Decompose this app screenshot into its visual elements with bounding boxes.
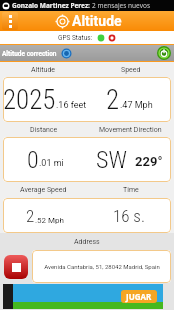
staticText: 229° — [135, 154, 163, 169]
button[interactable]: Altitude correction — [0, 45, 174, 61]
button[interactable]: Stop — [4, 255, 28, 279]
staticText: Time — [123, 186, 139, 194]
staticText: .52 Mph — [35, 216, 64, 225]
staticText: 2 — [106, 84, 120, 116]
staticText: Movement Direction — [99, 126, 162, 134]
staticText: 2 — [26, 206, 35, 226]
staticText: Speed — [121, 66, 141, 74]
staticText: Altitude — [72, 13, 122, 29]
button[interactable]: 2025 — [3, 77, 171, 122]
button[interactable]: Advertisement — [3, 284, 174, 309]
staticText: .47 Mph — [120, 100, 153, 111]
button[interactable]: 0 — [3, 137, 171, 182]
staticText: Altitude — [31, 66, 56, 74]
staticText: Avenida Cantabria, 51, 28042 Madrid, Spa… — [44, 263, 160, 270]
staticText: 2 mensajes nuevos — [92, 1, 150, 10]
staticText: .01 mi — [39, 158, 64, 169]
button[interactable]: 2 — [3, 198, 171, 233]
staticText: SW — [96, 146, 127, 174]
staticText: GPS Status: — [58, 34, 93, 42]
staticText: Average Speed — [20, 186, 67, 194]
staticText: 2025 — [3, 84, 56, 116]
staticText: Gonzalo Martinez Perez: — [12, 1, 90, 10]
staticText: JUGAR — [126, 291, 152, 302]
staticText: Altitude correction — [2, 50, 57, 58]
staticText: .16 feet — [56, 100, 87, 111]
staticText: 0 — [27, 146, 39, 174]
staticText: 16 s. — [113, 206, 145, 226]
button[interactable]: Avenida Cantabria, 51, 28042 Madrid, Spa… — [32, 250, 171, 283]
staticText: Distance — [30, 126, 58, 134]
button[interactable]: Power toggle — [157, 46, 171, 60]
button[interactable]: App menu — [2, 12, 18, 30]
staticText: Address — [74, 238, 100, 246]
